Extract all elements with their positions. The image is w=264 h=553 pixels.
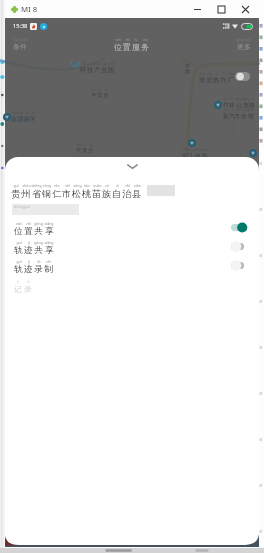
staticText: 苗 bbox=[92, 188, 102, 200]
staticText: 共 bbox=[34, 245, 43, 256]
staticText: 竹 bbox=[223, 101, 229, 108]
staticText: zhōu bbox=[22, 183, 31, 188]
staticText: 县 bbox=[132, 188, 142, 200]
button[interactable]: tiáo bbox=[13, 38, 27, 51]
staticText: chǎng bbox=[227, 72, 236, 76]
staticText: fú bbox=[134, 37, 138, 42]
staticText: yuán bbox=[108, 62, 115, 66]
staticText: tóng bbox=[43, 183, 51, 188]
button[interactable]: guǐ bbox=[5, 240, 259, 257]
staticText: 新 bbox=[24, 115, 30, 122]
staticText: 自 bbox=[112, 188, 122, 200]
staticText: 台 bbox=[103, 92, 109, 99]
staticText: 力 bbox=[220, 76, 227, 84]
staticText: xiǎng bbox=[44, 240, 54, 245]
staticText: 东 bbox=[243, 101, 249, 108]
staticText: 位 bbox=[14, 226, 23, 237]
staticText: 仁 bbox=[52, 188, 62, 200]
staticText: chǎn bbox=[94, 62, 101, 66]
staticText: tiáo bbox=[14, 38, 20, 42]
staticText: 厂 bbox=[228, 76, 235, 84]
button[interactable]: Close window bbox=[233, 1, 257, 18]
staticText: 迹 bbox=[24, 264, 33, 275]
staticText: jiàn bbox=[21, 38, 27, 42]
button[interactable]: jì bbox=[14, 279, 32, 294]
staticText: rén bbox=[54, 183, 60, 188]
staticText: běi bbox=[182, 148, 187, 152]
staticText: 源 bbox=[185, 68, 190, 74]
staticText: 迹 bbox=[24, 245, 33, 256]
staticText: 产 bbox=[94, 66, 101, 74]
staticText: 平 bbox=[91, 92, 97, 99]
staticText: 治 bbox=[122, 188, 132, 200]
staticText: 滑 bbox=[199, 76, 206, 84]
staticText: guǐ bbox=[16, 259, 22, 264]
button[interactable]: Collapse sheet bbox=[5, 157, 259, 175]
button[interactable]: Map layer toggle bbox=[235, 72, 250, 81]
staticText: yán bbox=[207, 72, 212, 76]
staticText: g bbox=[22, 205, 24, 209]
staticText: zì bbox=[116, 183, 119, 188]
staticText: guì bbox=[13, 183, 19, 188]
staticText: 北 bbox=[181, 152, 187, 159]
staticText: duō bbox=[245, 38, 251, 42]
staticText: shì bbox=[65, 183, 70, 188]
staticText: 制 bbox=[44, 264, 53, 275]
staticText: zhì bbox=[46, 259, 51, 264]
staticText: 州 bbox=[21, 188, 31, 200]
staticText: 车 bbox=[235, 112, 241, 119]
button[interactable]: guǐ bbox=[5, 259, 259, 276]
staticText: 享 bbox=[45, 245, 54, 256]
staticText: 岩 bbox=[206, 76, 213, 84]
staticText: zú bbox=[105, 183, 109, 188]
staticText: gòng bbox=[34, 221, 43, 226]
staticText: 中 bbox=[195, 152, 201, 159]
staticText: 门 bbox=[187, 152, 193, 159]
staticText: 安 bbox=[82, 147, 88, 154]
button[interactable]: Maximize window bbox=[209, 1, 233, 18]
staticText: 记 bbox=[14, 284, 22, 294]
staticText: jì bbox=[28, 240, 30, 245]
button[interactable]: gèng bbox=[236, 38, 251, 51]
staticText: zhì bbox=[26, 221, 31, 226]
staticText: 件 bbox=[20, 42, 27, 51]
staticText: 桃 bbox=[82, 188, 92, 200]
staticText: lù bbox=[27, 279, 30, 284]
button[interactable]: wèi bbox=[5, 221, 259, 238]
staticText: 水 bbox=[185, 62, 190, 68]
staticText: lù bbox=[37, 259, 41, 264]
staticText: 林 bbox=[229, 101, 235, 108]
staticText: 置 bbox=[123, 42, 131, 52]
staticText: wù bbox=[143, 37, 148, 42]
button[interactable]: Minimize window bbox=[185, 1, 209, 18]
staticText: 务 bbox=[141, 42, 149, 52]
staticText: 路 bbox=[249, 101, 255, 108]
staticText: 新 bbox=[223, 112, 229, 119]
staticText: zhì bbox=[125, 183, 130, 188]
staticText: 共 bbox=[34, 226, 43, 237]
staticText: gòng bbox=[34, 240, 43, 245]
staticText: ó bbox=[28, 205, 30, 209]
staticText: 15:38 bbox=[13, 22, 28, 30]
staticText: 族 bbox=[102, 188, 112, 200]
staticText: 热 bbox=[213, 76, 220, 84]
staticText: 多 bbox=[244, 42, 251, 51]
staticText: 园 bbox=[18, 115, 24, 122]
